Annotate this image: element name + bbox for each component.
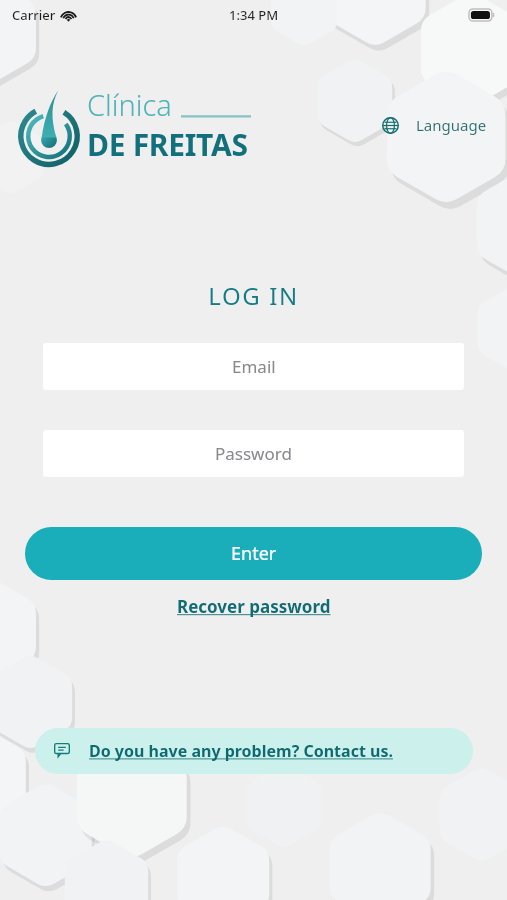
staticText: Carrier — [12, 6, 56, 24]
staticText: Do you have any problem? Contact us. — [89, 740, 393, 762]
staticText: Clínica — [87, 85, 172, 124]
staticText: LOG IN — [0, 279, 507, 312]
button[interactable]: Language — [378, 107, 491, 143]
staticText: Language — [416, 115, 487, 135]
staticText: Password — [215, 442, 292, 465]
button[interactable]: Do you have any problem? Contact us. — [35, 728, 473, 774]
button[interactable]: Email — [43, 343, 464, 390]
staticText: Recover password — [177, 595, 331, 618]
button[interactable]: Recover password — [167, 591, 341, 622]
staticText: DE FREITAS — [87, 124, 248, 165]
staticText: Email — [232, 355, 276, 378]
staticText: Enter — [231, 541, 277, 566]
button[interactable]: Enter — [25, 527, 482, 580]
button[interactable]: Password — [43, 430, 464, 477]
staticText: 1:34 PM — [229, 6, 279, 24]
